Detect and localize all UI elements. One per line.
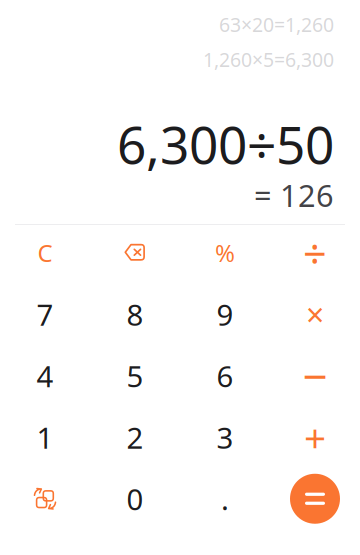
button[interactable]: .: [180, 471, 270, 532]
button[interactable]: +: [270, 409, 360, 471]
button[interactable]: C: [0, 225, 90, 286]
staticText: −: [302, 346, 327, 406]
button[interactable]: %: [180, 225, 270, 286]
staticText: C: [37, 236, 52, 269]
button[interactable]: 5: [90, 348, 180, 409]
button[interactable]: convert units: [0, 471, 90, 532]
button[interactable]: 0: [90, 471, 180, 532]
button[interactable]: 1: [0, 409, 90, 471]
button[interactable]: 3: [180, 409, 270, 471]
staticText: ÷: [303, 225, 327, 281]
staticText: = 126: [254, 174, 334, 216]
button[interactable]: equals: [270, 471, 360, 532]
staticText: 9: [216, 294, 233, 334]
staticText: 7: [36, 294, 53, 334]
button[interactable]: 7: [0, 286, 90, 348]
button[interactable]: 4: [0, 348, 90, 409]
staticText: %: [215, 236, 235, 269]
staticText: 0: [126, 479, 143, 519]
button[interactable]: ×: [270, 286, 360, 348]
staticText: ×: [306, 292, 324, 336]
staticText: .: [221, 479, 229, 519]
staticText: 6: [216, 356, 233, 396]
button[interactable]: ÷: [270, 225, 360, 286]
button[interactable]: delete: [90, 225, 180, 286]
staticText: 8: [126, 294, 143, 334]
staticText: 4: [36, 356, 53, 396]
button[interactable]: 2: [90, 409, 180, 471]
staticText: 1,260×5=6,300: [203, 46, 334, 73]
button[interactable]: 8: [90, 286, 180, 348]
staticText: 3: [216, 417, 233, 457]
button[interactable]: 9: [180, 286, 270, 348]
staticText: 2: [126, 417, 143, 457]
button[interactable]: −: [270, 348, 360, 409]
staticText: +: [304, 411, 326, 464]
staticText: 1: [36, 417, 53, 457]
button[interactable]: 6: [180, 348, 270, 409]
staticText: 6,300÷50: [117, 109, 334, 179]
staticText: 5: [126, 356, 143, 396]
staticText: 63×20=1,260: [219, 11, 334, 38]
